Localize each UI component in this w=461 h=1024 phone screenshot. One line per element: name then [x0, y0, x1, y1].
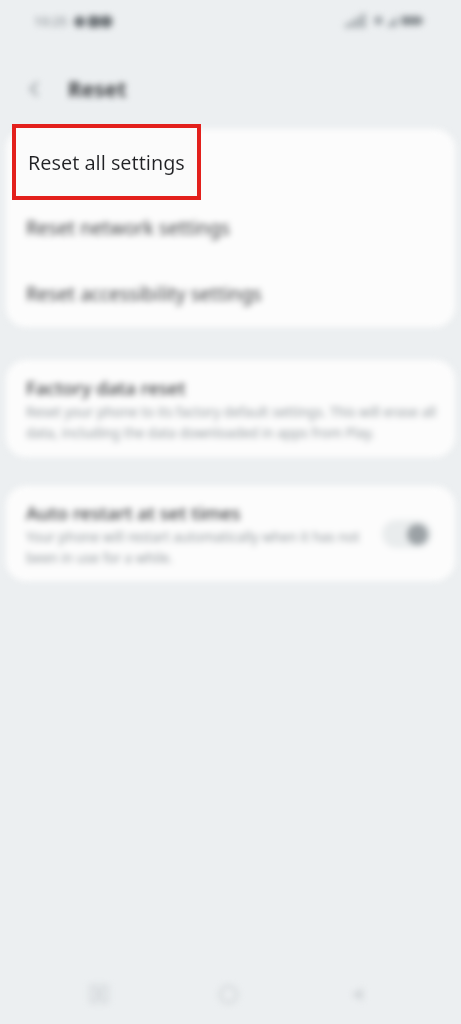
staticText: Factory data reset	[26, 375, 186, 400]
staticText: Auto restart at set times	[26, 500, 241, 525]
button[interactable]: Auto restart toggle	[382, 520, 432, 548]
button[interactable]: Reset all settings	[6, 129, 455, 195]
button[interactable]: Reset network settings	[6, 195, 455, 261]
button[interactable]: Auto restart at set times	[6, 486, 455, 581]
staticText: Reset	[68, 75, 127, 104]
button[interactable]: Recent apps	[73, 968, 125, 1020]
staticText: Reset all settings	[26, 149, 177, 175]
button[interactable]: Reset all settings	[12, 124, 201, 200]
staticText: Your phone will restart automatically wh…	[26, 528, 370, 567]
staticText: Reset network settings	[26, 215, 230, 241]
staticText: 10:25	[34, 12, 68, 30]
staticText: Reset all settings	[28, 149, 185, 176]
staticText: Reset accessibility settings	[26, 281, 262, 307]
staticText: Reset your phone to its factory default …	[26, 403, 437, 442]
button[interactable]: Factory data reset	[6, 360, 455, 457]
button[interactable]: Back	[20, 75, 48, 103]
button[interactable]: Reset accessibility settings	[6, 261, 455, 327]
